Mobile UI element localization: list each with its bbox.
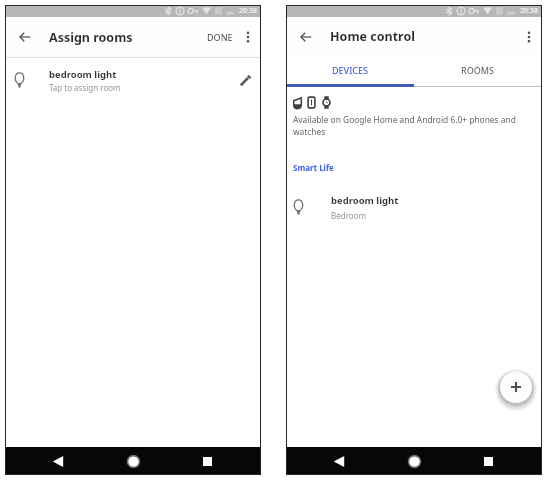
button[interactable]: Home <box>402 449 426 473</box>
button[interactable]: bedroom light <box>5 58 261 103</box>
button[interactable]: Back <box>15 27 35 47</box>
staticText: Assign rooms <box>49 29 133 46</box>
button[interactable]: Add device <box>500 371 532 403</box>
button[interactable]: Recents <box>476 449 500 473</box>
staticText: Tap to assign room <box>49 82 121 93</box>
staticText: DEVICES <box>332 64 368 76</box>
button[interactable]: More options <box>239 28 257 46</box>
button[interactable]: More options <box>520 28 538 46</box>
staticText: Bedroom <box>331 210 366 221</box>
button[interactable]: Recents <box>195 449 219 473</box>
staticText: Home control <box>330 28 415 45</box>
button[interactable]: bedroom light <box>286 189 542 225</box>
staticText: 20:38 <box>520 6 538 16</box>
button[interactable]: Smart Life <box>293 162 334 173</box>
staticText: bedroom light <box>331 194 399 207</box>
button[interactable]: ROOMS <box>414 56 542 84</box>
staticText: DONE <box>207 31 233 43</box>
staticText: bedroom light <box>49 68 117 81</box>
button[interactable]: DEVICES <box>286 56 414 84</box>
button[interactable]: Back <box>46 449 70 473</box>
staticText: 20:38 <box>239 6 257 16</box>
button[interactable]: Back <box>296 27 316 47</box>
button[interactable]: Home <box>121 449 145 473</box>
staticText: Smart Life <box>293 162 334 173</box>
button[interactable]: DONE <box>203 26 237 48</box>
button[interactable]: Edit <box>235 71 255 91</box>
staticText: Available on Google Home and Android 6.0… <box>293 114 526 138</box>
staticText: ROOMS <box>461 64 495 76</box>
button[interactable]: Back <box>327 449 351 473</box>
